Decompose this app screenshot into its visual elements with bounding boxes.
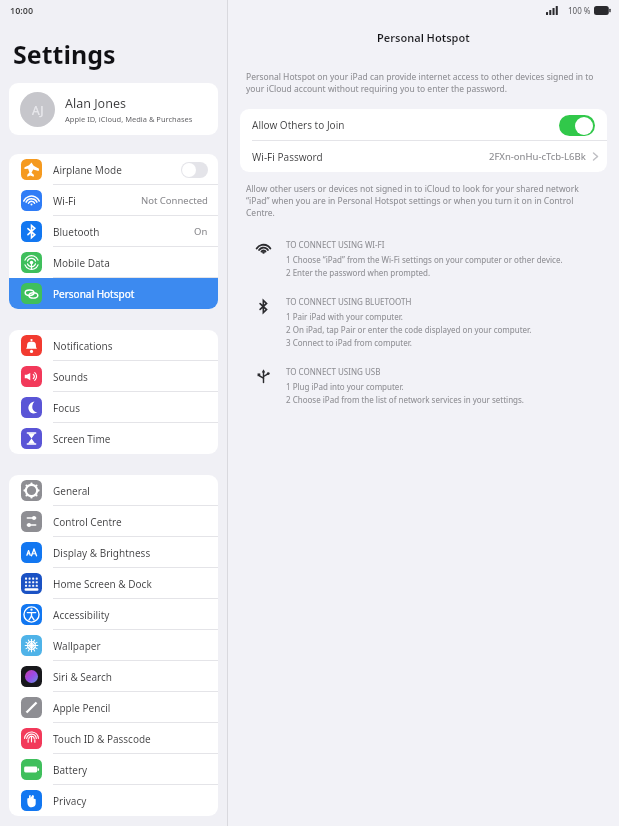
staticText: 1 Pair iPad with your computer. [286, 311, 403, 322]
button[interactable]: Notifications [9, 330, 218, 361]
staticText: Personal Hotspot on your iPad can provid… [246, 71, 601, 95]
staticText: Screen Time [53, 432, 111, 446]
button[interactable]: Battery [9, 754, 218, 785]
staticText: 2FXn-onHu-cTcb-L6Bk [489, 150, 586, 163]
staticText: 2 Enter the password when prompted. [286, 267, 431, 278]
button[interactable]: Siri & Search [9, 661, 218, 692]
staticText: Accessibility [53, 608, 110, 622]
button[interactable]: Accessibility [9, 599, 218, 630]
staticText: AJ [32, 102, 44, 118]
staticText: Bluetooth [53, 225, 100, 239]
button[interactable]: Airplane Mode toggle [181, 162, 208, 178]
staticText: Touch ID & Passcode [53, 732, 151, 746]
button[interactable]: Display & Brightness [9, 537, 218, 568]
staticText: Wallpaper [53, 639, 101, 653]
button[interactable]: Touch ID & Passcode [9, 723, 218, 754]
button[interactable]: Focus [9, 392, 218, 423]
button[interactable]: Allow Others to Join toggle [559, 115, 595, 136]
staticText: 1 Choose “iPad” from the Wi-Fi settings … [286, 254, 563, 265]
staticText: On [194, 225, 208, 238]
staticText: Display & Brightness [53, 546, 151, 560]
button[interactable]: Bluetooth [9, 216, 218, 247]
button[interactable]: Mobile Data [9, 247, 218, 278]
staticText: 10:00 [10, 4, 34, 16]
staticText: Personal Hotspot [377, 30, 470, 45]
button[interactable]: Control Centre [9, 506, 218, 537]
button[interactable]: Wi-Fi Password [240, 141, 607, 172]
staticText: General [53, 484, 90, 498]
button[interactable]: Home Screen & Dock [9, 568, 218, 599]
staticText: Control Centre [53, 515, 122, 529]
button[interactable]: Screen Time [9, 423, 218, 454]
button[interactable]: Airplane Mode [9, 154, 218, 185]
staticText: Apple Pencil [53, 701, 111, 715]
button[interactable]: Sounds [9, 361, 218, 392]
staticText: 2 On iPad, tap Pair or enter the code di… [286, 324, 532, 335]
staticText: Alan Jones [65, 95, 126, 112]
button[interactable]: Apple Pencil [9, 692, 218, 723]
staticText: Not Connected [141, 194, 208, 207]
button[interactable]: Allow Others to Join [240, 109, 607, 141]
button[interactable]: Personal Hotspot [9, 278, 218, 309]
staticText: TO CONNECT USING WI-FI [286, 239, 385, 250]
staticText: Home Screen & Dock [53, 577, 152, 591]
staticText: 1 Plug iPad into your computer. [286, 381, 404, 392]
button[interactable]: Wallpaper [9, 630, 218, 661]
button[interactable]: General [9, 475, 218, 506]
staticText: Focus [53, 401, 81, 415]
staticText: TO CONNECT USING USB [286, 366, 381, 377]
button[interactable]: Wi-Fi [9, 185, 218, 216]
staticText: 3 Connect to iPad from computer. [286, 337, 412, 348]
staticText: Allow Others to Join [252, 118, 345, 132]
staticText: Settings [13, 37, 116, 71]
staticText: Battery [53, 763, 88, 777]
staticText: TO CONNECT USING BLUETOOTH [286, 296, 412, 307]
staticText: Airplane Mode [53, 163, 122, 177]
staticText: Personal Hotspot [53, 287, 135, 301]
staticText: Mobile Data [53, 256, 110, 270]
staticText: Wi-Fi Password [252, 150, 323, 164]
staticText: Privacy [53, 794, 87, 808]
staticText: Apple ID, iCloud, Media & Purchases [65, 114, 193, 124]
staticText: Wi-Fi [53, 194, 76, 208]
staticText: Notifications [53, 339, 113, 353]
staticText: 2 Choose iPad from the list of network s… [286, 394, 524, 405]
button[interactable]: Privacy [9, 785, 218, 816]
staticText: 100 % [568, 5, 591, 16]
button[interactable]: AJ [9, 83, 218, 135]
staticText: Sounds [53, 370, 88, 384]
staticText: Siri & Search [53, 670, 112, 684]
staticText: Allow other users or devices not signed … [246, 183, 601, 219]
